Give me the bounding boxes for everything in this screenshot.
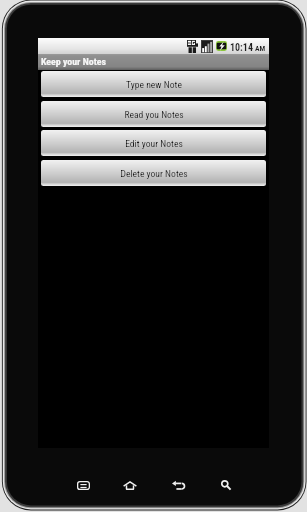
staticText: AM	[255, 44, 266, 53]
button[interactable]: Read you Notes	[41, 101, 266, 127]
button[interactable]: Home	[118, 473, 142, 497]
button[interactable]: Menu	[71, 473, 95, 497]
staticText: Type new Note	[126, 79, 182, 90]
button[interactable]: Delete your Notes	[41, 160, 266, 186]
button[interactable]: Type new Note	[41, 71, 266, 97]
button[interactable]: Search	[214, 473, 238, 497]
button[interactable]: Back	[166, 473, 190, 497]
button[interactable]: Edit your Notes	[41, 130, 266, 156]
staticText: 10:14	[230, 42, 253, 54]
staticText: Edit your Notes	[125, 138, 183, 149]
staticText: Read you Notes	[124, 109, 184, 120]
staticText: Delete your Notes	[120, 168, 188, 179]
staticText: Keep your Notes	[41, 56, 106, 68]
